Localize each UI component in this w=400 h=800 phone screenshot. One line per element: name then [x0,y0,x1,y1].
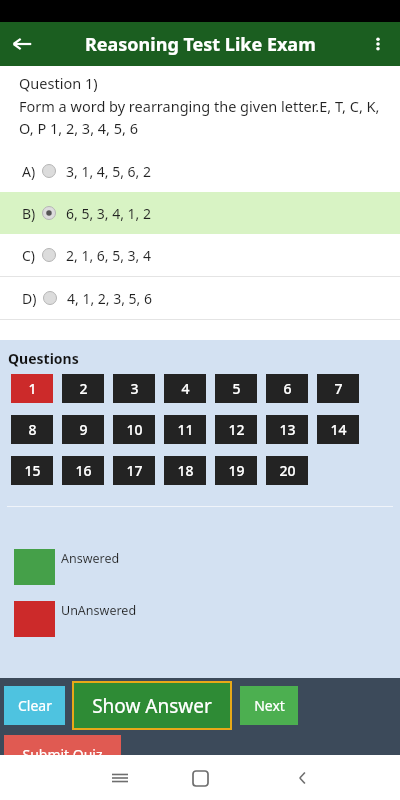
staticText: 8 [28,420,37,439]
staticText: 20 [279,461,296,480]
staticText: 9 [79,420,88,439]
button[interactable]: 2 [62,374,104,403]
button[interactable]: 19 [215,456,257,485]
button[interactable]: 12 [215,415,257,444]
staticText: 5 [232,379,241,398]
staticText: C) [22,246,36,265]
button[interactable]: 6 [266,374,308,403]
button[interactable]: 9 [62,415,104,444]
button[interactable]: 20 [266,456,308,485]
staticText: Reasoning Test Like Exam [85,32,316,57]
staticText: 2 [79,379,88,398]
button[interactable]: Home [180,758,220,798]
staticText: 11 [177,420,194,439]
button[interactable]: Back [283,758,323,798]
staticText: Show Answer [92,693,212,719]
staticText: 15 [24,461,41,480]
button[interactable]: More options [356,22,400,66]
button[interactable]: 14 [317,415,359,444]
staticText: 1 [28,379,37,398]
button[interactable]: 15 [11,456,53,485]
button[interactable]: 3 [113,374,155,403]
staticText: 12 [228,420,245,439]
staticText: Answered [61,550,120,567]
button[interactable]: Submit Quiz [4,735,121,755]
staticText: 3, 1, 4, 5, 6, 2 [66,162,152,181]
button[interactable]: 13 [266,415,308,444]
staticText: 14 [330,420,347,439]
staticText: B) [22,204,36,223]
staticText: 16 [75,461,92,480]
button[interactable]: 10 [113,415,155,444]
button[interactable]: A) [0,150,400,192]
button[interactable]: 11 [164,415,206,444]
staticText: 19 [228,461,245,480]
staticText: Question 1) [19,73,98,93]
staticText: 6, 5, 3, 4, 1, 2 [66,204,152,223]
button[interactable]: Clear [4,686,65,725]
staticText: Questions [8,349,79,368]
staticText: Clear [18,696,52,715]
button[interactable]: Recent apps [100,758,140,798]
staticText: 2, 1, 6, 5, 3, 4 [66,246,152,265]
staticText: 13 [279,420,296,439]
staticText: D) [22,289,37,308]
button[interactable]: Back [0,22,44,66]
button[interactable]: 4 [164,374,206,403]
staticText: 4 [181,379,190,398]
staticText: 6 [283,379,292,398]
staticText: Form a word by rearranging the given let… [19,96,390,138]
staticText: A) [22,162,36,181]
staticText: 10 [126,420,143,439]
staticText: 3 [130,379,139,398]
staticText: 4, 1, 2, 3, 5, 6 [67,289,153,308]
button[interactable]: 17 [113,456,155,485]
button[interactable]: Next [240,686,298,725]
staticText: Submit Quiz [22,745,103,755]
button[interactable]: 16 [62,456,104,485]
button[interactable]: 5 [215,374,257,403]
button[interactable]: 1 [11,374,53,403]
button[interactable]: C) [0,234,400,276]
staticText: UnAnswered [61,602,137,619]
button[interactable]: 18 [164,456,206,485]
button[interactable]: B) [0,192,400,234]
staticText: Next [254,696,285,715]
button[interactable]: 8 [11,415,53,444]
staticText: 7 [334,379,343,398]
staticText: 17 [126,461,143,480]
button[interactable]: 7 [317,374,359,403]
button[interactable]: D) [0,277,400,319]
staticText: 18 [177,461,194,480]
button[interactable]: Show Answer [72,681,232,730]
